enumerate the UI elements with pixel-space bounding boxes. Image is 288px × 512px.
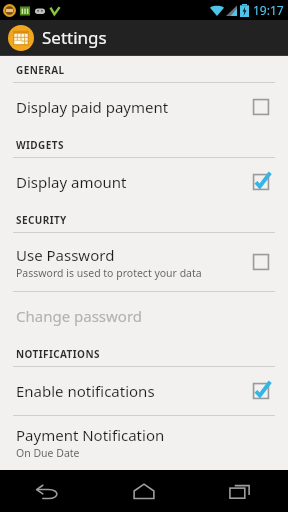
button[interactable]: Settings [0, 20, 288, 55]
staticText: SECURITY [16, 213, 67, 227]
button[interactable]: Change password [0, 292, 288, 340]
button[interactable]: Checked [248, 169, 274, 195]
staticText: 19:17 [253, 2, 284, 18]
staticText: Settings [42, 26, 107, 49]
button[interactable]: Display amount [0, 158, 288, 206]
staticText: Display paid payment [16, 97, 169, 117]
staticText: Enable notifications [16, 381, 155, 401]
staticText: NOTIFICATIONS [16, 347, 100, 361]
button[interactable]: Enable notifications [0, 367, 288, 415]
button[interactable]: Unchecked [248, 94, 274, 120]
button[interactable]: Home [96, 470, 192, 512]
button[interactable]: Recent apps [192, 470, 288, 512]
button[interactable]: Display paid payment [0, 83, 288, 131]
button[interactable]: Unchecked [248, 249, 274, 275]
button[interactable]: Back [0, 470, 96, 512]
staticText: Change password [16, 306, 143, 326]
staticText: Use Password [16, 245, 115, 265]
staticText: Password is used to protect your data [16, 266, 202, 280]
staticText: On Due Date [16, 446, 80, 460]
staticText: GENERAL [16, 63, 65, 77]
button[interactable]: Payment Notification [0, 416, 288, 468]
staticText: Payment Notification [16, 425, 165, 445]
button[interactable]: Checked [248, 378, 274, 404]
staticText: Display amount [16, 172, 127, 192]
button[interactable]: Use Password [0, 233, 288, 291]
staticText: WIDGETS [16, 138, 64, 152]
